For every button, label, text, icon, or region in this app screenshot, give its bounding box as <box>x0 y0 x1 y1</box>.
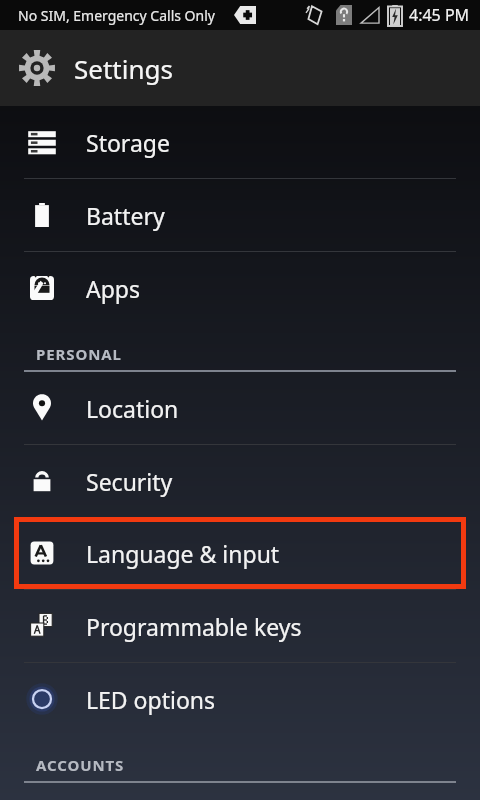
staticText: Security <box>86 466 173 497</box>
other: Settings icon <box>18 49 56 87</box>
staticText: ACCOUNTS <box>36 755 125 775</box>
button[interactable]: Location <box>0 372 480 445</box>
staticText: Settings <box>74 51 173 86</box>
staticText: No SIM, Emergency Calls Only <box>18 6 215 25</box>
button[interactable]: Programmable keys <box>0 590 480 663</box>
staticText: Language & input <box>86 538 280 569</box>
button[interactable]: Apps <box>0 252 480 324</box>
staticText: PERSONAL <box>36 344 122 364</box>
button[interactable]: LED options <box>0 663 480 735</box>
staticText: Location <box>86 393 179 424</box>
staticText: 4:45 PM <box>409 4 470 26</box>
staticText: LED options <box>86 684 216 715</box>
staticText: Programmable keys <box>86 611 302 642</box>
button[interactable]: Language & input <box>14 517 466 589</box>
staticText: Storage <box>86 127 170 158</box>
button[interactable]: Security <box>0 445 480 517</box>
staticText: Battery <box>86 200 165 231</box>
staticText: Apps <box>86 273 141 304</box>
button[interactable]: Storage <box>0 106 480 179</box>
button[interactable]: Battery <box>0 179 480 252</box>
